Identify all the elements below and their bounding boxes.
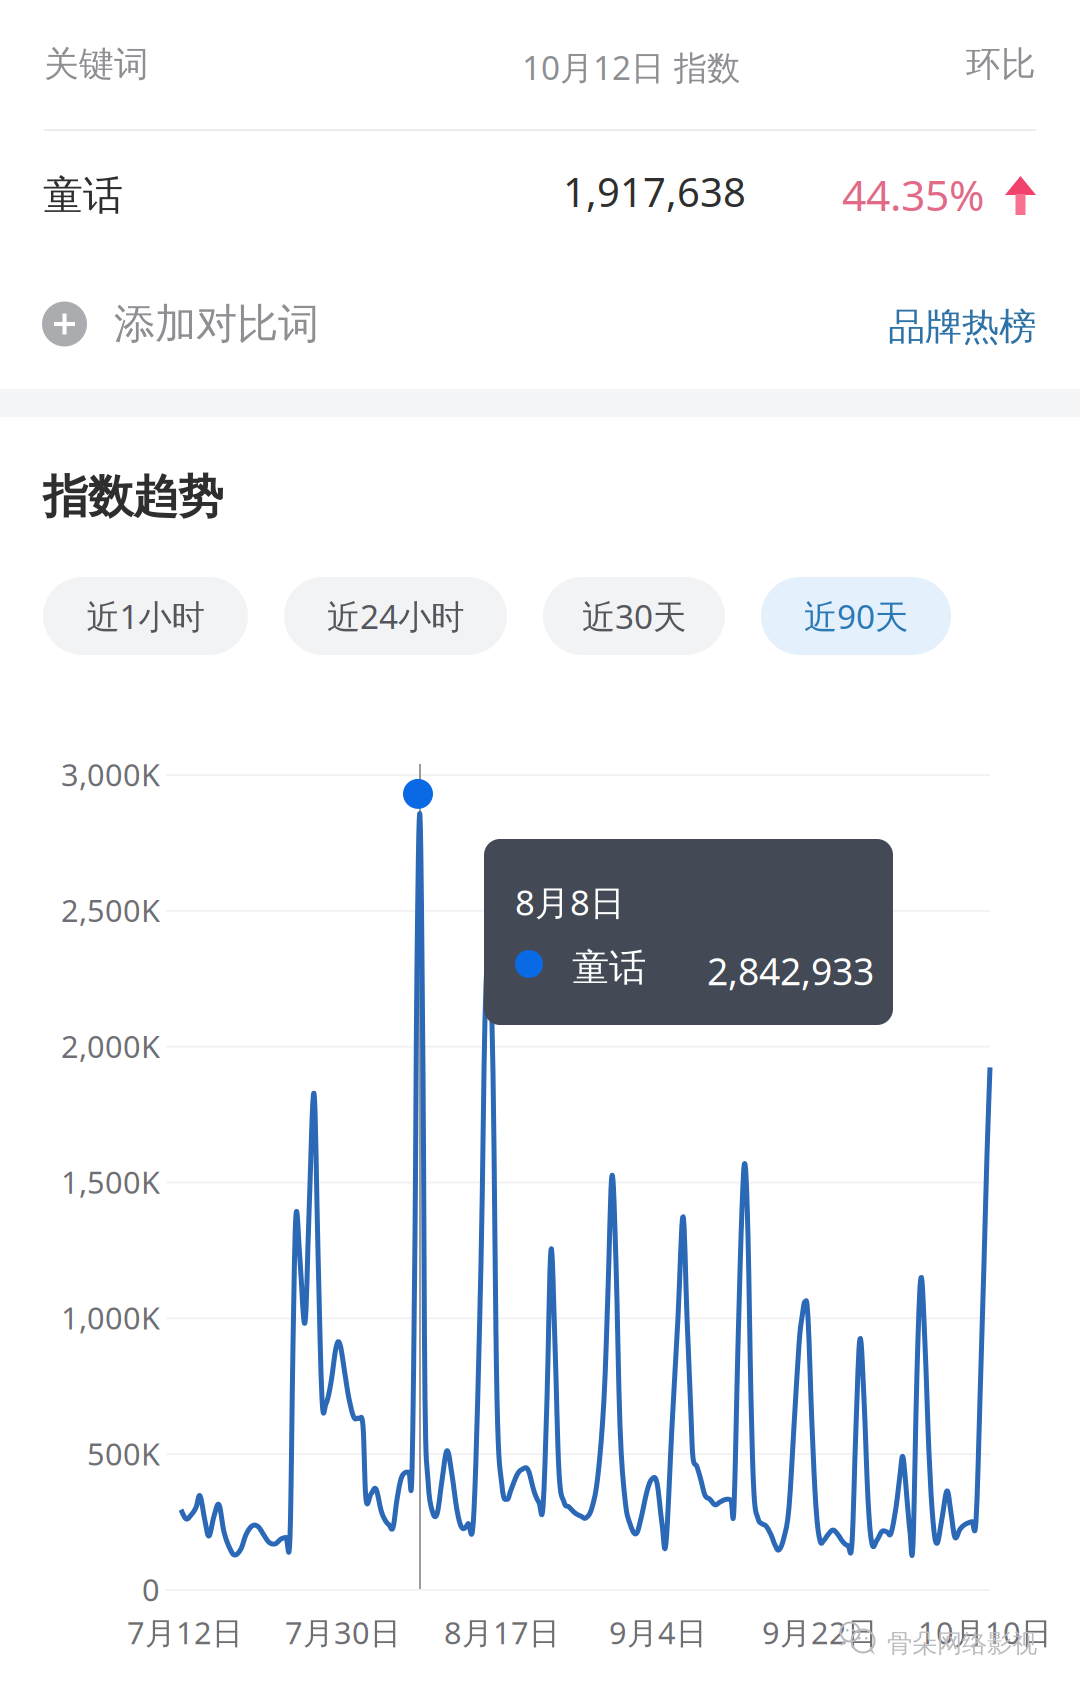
staticText: 童话: [43, 171, 123, 220]
staticText: 添加对比词: [114, 299, 319, 349]
staticText: 7月30日: [285, 1612, 401, 1653]
button[interactable]: 品牌热榜: [878, 294, 1046, 360]
staticText: 10月10日: [918, 1612, 1052, 1653]
button[interactable]: 近30天: [543, 577, 725, 655]
staticText: 1,917,638: [563, 165, 746, 218]
staticText: 3,000K: [61, 754, 160, 795]
staticText: 近30天: [582, 594, 686, 638]
staticText: 关键词: [44, 43, 149, 86]
staticText: 近1小时: [86, 594, 204, 638]
staticText: 500K: [87, 1433, 160, 1474]
staticText: 8月8日: [515, 879, 625, 925]
staticText: 近24小时: [327, 594, 464, 638]
staticText: 1,500K: [61, 1161, 160, 1202]
staticText: 童话: [572, 945, 646, 991]
button[interactable]: 近90天: [761, 577, 951, 655]
staticText: 7月12日: [127, 1612, 243, 1653]
staticText: 近90天: [804, 594, 908, 638]
button[interactable]: 近1小时: [43, 577, 248, 655]
staticText: 0: [142, 1569, 160, 1610]
staticText: 44.35%: [842, 166, 984, 223]
staticText: 环比: [966, 43, 1036, 86]
button[interactable]: 添加对比词: [42, 290, 442, 358]
staticText: 2,842,933: [707, 946, 874, 996]
staticText: 8月17日: [444, 1612, 560, 1653]
staticText: 10月12日 指数: [522, 45, 740, 89]
staticText: 1,000K: [61, 1297, 160, 1338]
staticText: 骨朵网络影视: [887, 1628, 1037, 1659]
staticText: 指数趋势: [43, 469, 223, 525]
staticText: 9月22日: [762, 1612, 878, 1653]
staticText: 9月4日: [609, 1612, 707, 1653]
staticText: 2,000K: [61, 1026, 160, 1066]
button[interactable]: 近24小时: [284, 577, 507, 655]
staticText: 品牌热榜: [888, 304, 1036, 350]
staticText: 2,500K: [61, 890, 160, 930]
